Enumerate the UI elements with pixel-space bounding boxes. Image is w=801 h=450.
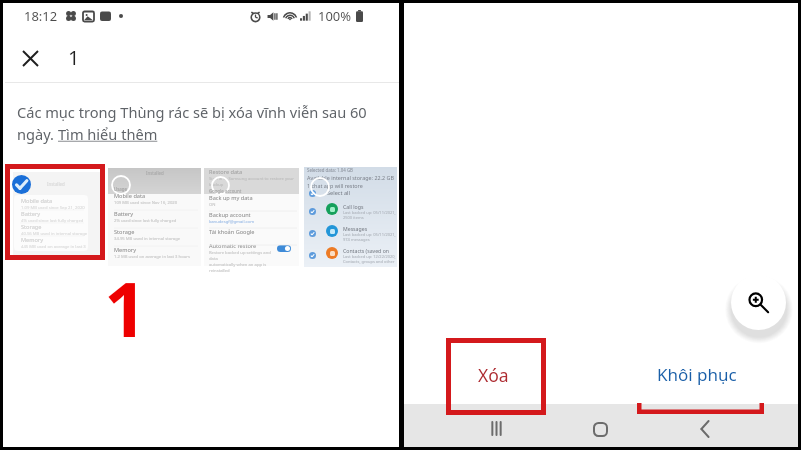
staticText: 2500 items: [343, 215, 364, 220]
staticText: Last backed up: 05/11/2021, 14:24: [343, 232, 404, 237]
staticText: Selected data: 1.04 GB: [307, 167, 353, 173]
button[interactable]: Back: [690, 414, 720, 444]
button[interactable]: Xóa: [443, 344, 543, 405]
button[interactable]: Recent apps: [481, 413, 511, 443]
staticText: Sign in to Samsung account to restore yo…: [209, 176, 304, 188]
button[interactable]: Installed: [108, 167, 201, 267]
staticText: Khôi phục: [657, 363, 737, 386]
staticText: Storage: [114, 228, 135, 236]
staticText: 18:12: [24, 7, 58, 25]
button[interactable]: Zoom in: [731, 275, 786, 330]
staticText: Usage: [114, 186, 127, 192]
staticText: Các mục trong Thùng rác sẽ bị xóa vĩnh v…: [17, 102, 367, 122]
staticText: automatically when an app is reinstalled: [209, 262, 277, 274]
staticText: Usage: [20, 194, 33, 200]
staticText: 40.56 MB used in internal storage: [21, 231, 88, 236]
staticText: Contacts (saved on phone): [343, 247, 404, 254]
staticText: 1: [104, 257, 147, 359]
staticText: Installed: [146, 170, 164, 176]
staticText: ngày.: [17, 124, 58, 144]
staticText: Mobile data: [21, 197, 53, 205]
staticText: Restore backed up settings and data: [209, 250, 277, 262]
button[interactable]: Installed: [8, 167, 102, 267]
staticText: Memory: [21, 236, 44, 244]
staticText: Last backed up: 12/22/2020, 10:53: [343, 254, 404, 259]
button[interactable]: Home: [585, 414, 615, 444]
staticText: Back up my data: [209, 194, 253, 202]
staticText: 100%: [318, 7, 352, 25]
staticText: Messages: [343, 225, 368, 232]
staticText: Select all: [327, 189, 351, 197]
staticText: Last backed up: 05/11/2021, 14:24: [343, 210, 404, 215]
staticText: 974 messages: [343, 237, 370, 242]
staticText: ON: [209, 202, 216, 208]
staticText: Tài khoản Google: [209, 228, 255, 236]
button[interactable]: Selected data: 1.04 GB: [304, 167, 399, 267]
staticText: 1: [68, 44, 80, 71]
staticText: 4% used since last fully charged: [21, 218, 84, 223]
staticText: Xóa: [478, 363, 509, 387]
staticText: 2% used since last fully charged: [114, 218, 177, 224]
button[interactable]: Close: [13, 41, 47, 75]
staticText: 34.95 MB used in internal storage: [114, 236, 181, 242]
staticText: Google account: [209, 188, 242, 194]
staticText: Mobile data: [114, 192, 146, 200]
staticText: data: [209, 188, 218, 194]
staticText: 1.09 MB used since Sep 21, 2020: [21, 205, 85, 210]
button[interactable]: Restore data: [204, 167, 299, 267]
staticText: Battery: [114, 210, 134, 218]
staticText: Storage: [21, 223, 42, 231]
staticText: Call logs: [343, 203, 364, 210]
staticText: Installed: [47, 181, 65, 187]
staticText: 1 chat app will restore: [307, 182, 363, 189]
staticText: Memory: [114, 246, 137, 254]
staticText: Available internal storage: 22.2 GB: [307, 174, 394, 181]
button[interactable]: Tìm hiểu thêm: [58, 124, 158, 144]
staticText: kanudesgf@gmail.com: [209, 219, 255, 225]
staticText: 445 MB used on average in last 3 hours: [21, 244, 88, 249]
staticText: Backup account: [209, 211, 251, 219]
staticText: 109 MB used since Nov 16, 2020: [114, 200, 178, 206]
staticText: Contacts, groups and other: [343, 259, 395, 264]
staticText: 1.2 MB used on average in last 3 hours: [114, 254, 191, 260]
button[interactable]: Khôi phục: [633, 344, 761, 405]
staticText: Battery: [21, 210, 41, 218]
staticText: Automatic restore: [209, 242, 257, 250]
staticText: Restore data: [209, 168, 243, 176]
